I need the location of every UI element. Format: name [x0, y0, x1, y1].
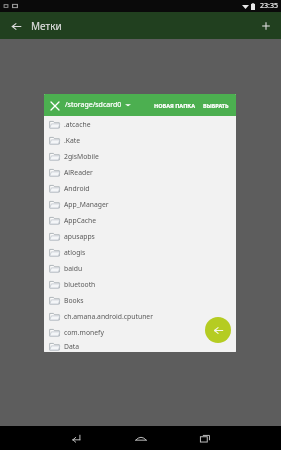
button[interactable]: Home [120, 426, 162, 450]
staticText: /storage/sdcard0 [65, 100, 122, 110]
button[interactable]: Recent apps [184, 426, 226, 450]
button[interactable]: App_Manager [44, 196, 236, 212]
staticText: Метки [31, 19, 62, 33]
button[interactable]: com.monefy [44, 324, 236, 340]
staticText: com.monefy [64, 328, 104, 337]
staticText: ch.amana.android.cputuner [64, 312, 153, 321]
button[interactable]: Data [44, 340, 236, 352]
button[interactable]: Back [6, 16, 26, 36]
button[interactable]: 2gisMobile [44, 148, 236, 164]
button[interactable]: Close [46, 97, 63, 114]
button[interactable]: AppCache [44, 212, 236, 228]
button[interactable]: .Kate [44, 132, 236, 148]
staticText: App_Manager [64, 200, 109, 209]
staticText: atlogis [64, 248, 86, 257]
button[interactable]: atlogis [44, 244, 236, 260]
button[interactable]: baidu [44, 260, 236, 276]
staticText: .atcache [64, 120, 91, 129]
staticText: 23:35 [260, 1, 278, 11]
button[interactable]: bluetooth [44, 276, 236, 292]
button[interactable]: ВЫБРАТЬ [200, 99, 232, 112]
staticText: AppCache [64, 216, 97, 225]
button[interactable]: Back [205, 317, 231, 343]
button[interactable]: Books [44, 292, 236, 308]
staticText: bluetooth [64, 280, 96, 289]
button[interactable]: ch.amana.android.cputuner [44, 308, 236, 324]
button[interactable]: apusapps [44, 228, 236, 244]
staticText: AlReader [64, 168, 93, 177]
staticText: .Kate [64, 136, 81, 145]
button[interactable]: НОВАЯ ПАПКА [151, 99, 198, 112]
button[interactable]: Change folder [122, 99, 134, 111]
button[interactable]: Android [44, 180, 236, 196]
staticText: baidu [64, 264, 83, 273]
button[interactable]: Add [256, 16, 276, 36]
staticText: Data [64, 342, 80, 351]
staticText: apusapps [64, 232, 95, 241]
button[interactable]: .atcache [44, 116, 236, 132]
staticText: Books [64, 296, 84, 305]
staticText: ВЫБРАТЬ [203, 102, 229, 109]
button[interactable]: Back [56, 426, 98, 450]
staticText: Android [64, 184, 90, 193]
staticText: НОВАЯ ПАПКА [154, 102, 195, 109]
button[interactable]: AlReader [44, 164, 236, 180]
staticText: 2gisMobile [64, 152, 99, 161]
